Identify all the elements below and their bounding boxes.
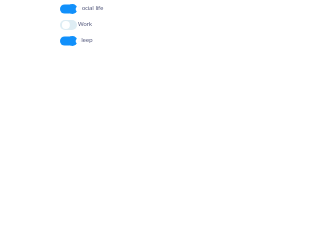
staticText: Work (78, 20, 92, 28)
staticText: S ocial life (78, 4, 104, 12)
staticText: S leep (78, 36, 93, 44)
button[interactable]: S leep, on (60, 33, 108, 49)
button[interactable]: S ocial life, on (60, 1, 108, 17)
button[interactable]: Work, off (60, 17, 108, 33)
